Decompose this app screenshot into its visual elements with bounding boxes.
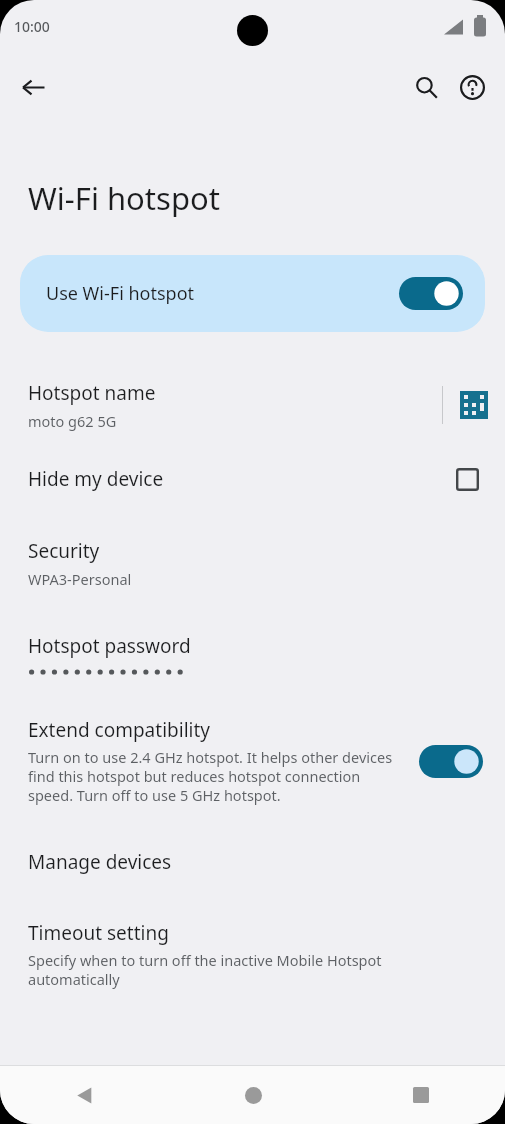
button[interactable]: Back bbox=[0, 1066, 169, 1124]
button[interactable]: Use Wi-Fi hotspot bbox=[20, 255, 485, 332]
staticText: Hotspot password bbox=[28, 633, 191, 659]
staticText: Security bbox=[28, 538, 100, 564]
staticText: Hotspot name bbox=[28, 380, 156, 406]
staticText: Use Wi-Fi hotspot bbox=[46, 281, 399, 306]
button[interactable]: Hide my device bbox=[0, 460, 505, 498]
button[interactable]: Timeout setting bbox=[0, 916, 505, 993]
button[interactable]: Security bbox=[0, 534, 505, 593]
button[interactable]: Hotspot password bbox=[0, 629, 505, 680]
button[interactable]: Recent apps bbox=[337, 1066, 505, 1124]
button[interactable]: Hotspot name bbox=[0, 376, 442, 435]
button[interactable]: Share hotspot QR code bbox=[443, 374, 505, 436]
staticText: Extend compatibility bbox=[28, 717, 210, 743]
staticText: WPA3-Personal bbox=[28, 569, 132, 589]
staticText: Wi-Fi hotspot bbox=[28, 177, 220, 219]
staticText: Turn on to use 2.4 GHz hotspot. It helps… bbox=[28, 747, 403, 805]
button[interactable]: Help bbox=[449, 64, 495, 110]
button[interactable]: Home bbox=[169, 1066, 337, 1124]
staticText: Manage devices bbox=[28, 849, 172, 875]
button[interactable]: Search bbox=[403, 64, 449, 110]
button[interactable]: Extend compatibility bbox=[0, 713, 505, 809]
button[interactable]: Manage devices bbox=[0, 844, 505, 880]
staticText: 10:00 bbox=[14, 17, 50, 36]
staticText: moto g62 5G bbox=[28, 411, 117, 431]
staticText: Specify when to turn off the inactive Mo… bbox=[28, 950, 413, 989]
button[interactable]: Navigate up bbox=[10, 64, 56, 110]
staticText: Timeout setting bbox=[28, 920, 169, 946]
staticText: Hide my device bbox=[28, 466, 456, 492]
